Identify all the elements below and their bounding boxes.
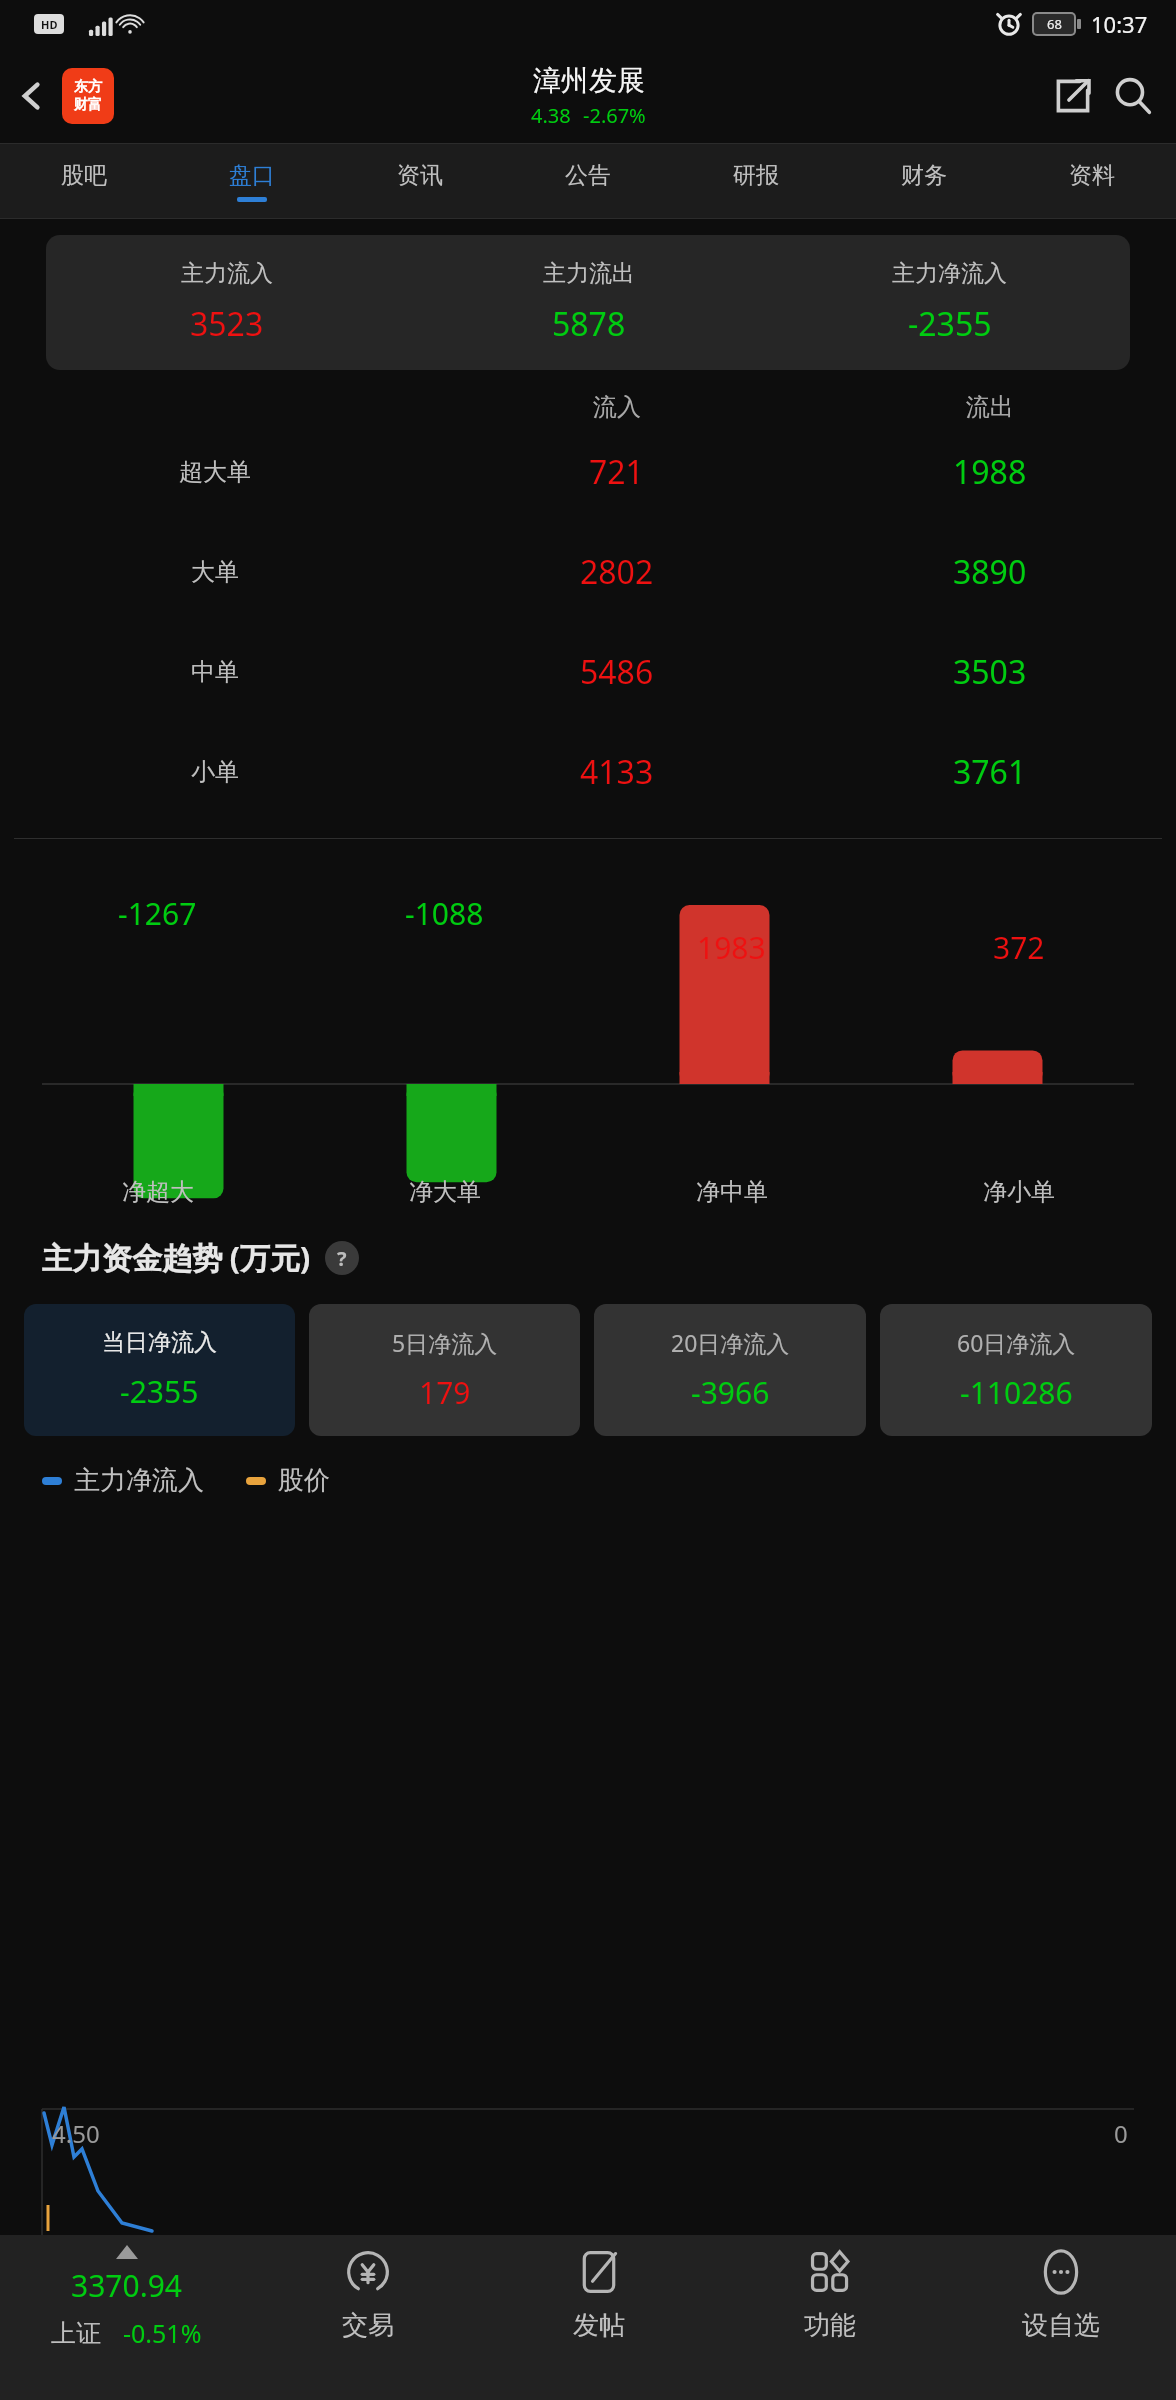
- staticText: 4133: [580, 750, 654, 794]
- staticText: 漳州发展: [533, 63, 645, 98]
- staticText: -2355: [908, 302, 992, 346]
- staticText: 179: [419, 1372, 471, 1413]
- staticText: 资讯: [397, 161, 443, 190]
- staticText: 4.50: [52, 2117, 100, 2150]
- staticText: 大单: [191, 557, 239, 587]
- button[interactable]: 当日净流入: [24, 1304, 295, 1436]
- staticText: 721: [589, 450, 644, 494]
- button[interactable]: 大单: [0, 522, 1176, 622]
- staticText: 研报: [733, 161, 779, 190]
- staticText: 主力流出: [543, 259, 635, 288]
- staticText: 公告: [565, 161, 611, 190]
- staticText: 财富: [74, 96, 102, 114]
- staticText: 功能: [804, 2309, 856, 2342]
- staticText: 设自选: [1022, 2309, 1100, 2342]
- button[interactable]: Search: [1102, 65, 1164, 127]
- button[interactable]: 中单: [0, 622, 1176, 722]
- staticText: -0.51%: [123, 2316, 202, 2350]
- staticText: 超大单: [179, 457, 251, 487]
- staticText: 3761: [953, 750, 1027, 794]
- staticText: 净大单: [409, 1177, 481, 1207]
- staticText: HD: [41, 17, 58, 32]
- button[interactable]: Share: [1044, 67, 1102, 125]
- staticText: 股价: [278, 1464, 330, 1497]
- button[interactable]: 公告: [504, 143, 672, 219]
- staticText: ?: [337, 1245, 347, 1272]
- staticText: 20日净流入: [671, 1327, 790, 1358]
- button[interactable]: 3370.94: [0, 2235, 253, 2400]
- staticText: 3503: [953, 650, 1027, 694]
- staticText: 60日净流入: [957, 1327, 1076, 1358]
- staticText: 财务: [901, 161, 947, 190]
- staticText: 净超大: [122, 1177, 194, 1207]
- staticText: 5878: [552, 302, 626, 346]
- button[interactable]: 资料: [1008, 143, 1176, 219]
- staticText: 1988: [953, 450, 1027, 494]
- button[interactable]: 功能: [714, 2235, 945, 2400]
- button[interactable]: 主力流入: [46, 235, 1130, 370]
- staticText: 0: [1114, 2117, 1128, 2150]
- staticText: 股吧: [61, 161, 107, 190]
- staticText: 盘口: [229, 161, 275, 190]
- button[interactable]: 交易: [253, 2235, 483, 2400]
- staticText: 净中单: [696, 1177, 768, 1207]
- button[interactable]: 5日净流入: [309, 1304, 580, 1436]
- staticText: -2.67%: [583, 102, 646, 129]
- staticText: 主力资金趋势 (万元): [42, 1237, 311, 1278]
- staticText: 流入: [593, 392, 641, 422]
- staticText: 372: [993, 927, 1045, 968]
- button[interactable]: 股吧: [0, 143, 168, 219]
- staticText: -1267: [118, 893, 197, 934]
- staticText: 主力净流入: [74, 1464, 204, 1497]
- button[interactable]: East Money: [62, 68, 114, 124]
- staticText: -2355: [120, 1371, 199, 1412]
- button[interactable]: 设自选: [945, 2235, 1176, 2400]
- button[interactable]: 研报: [672, 143, 840, 219]
- staticText: 5486: [580, 650, 654, 694]
- staticText: 资料: [1069, 161, 1115, 190]
- staticText: -3966: [691, 1372, 770, 1413]
- staticText: 中单: [191, 657, 239, 687]
- staticText: 主力流入: [181, 259, 273, 288]
- staticText: 10:37: [1091, 9, 1148, 39]
- button[interactable]: 财务: [840, 143, 1008, 219]
- button[interactable]: 60日净流入: [880, 1304, 1152, 1436]
- button[interactable]: Help: [325, 1241, 359, 1275]
- button[interactable]: 小单: [0, 722, 1176, 822]
- staticText: 5日净流入: [392, 1327, 498, 1358]
- staticText: 当日净流入: [102, 1328, 217, 1357]
- staticText: 3370.94: [71, 2265, 182, 2306]
- staticText: 发帖: [573, 2309, 625, 2342]
- staticText: 流出: [966, 392, 1014, 422]
- button[interactable]: 资讯: [336, 143, 504, 219]
- staticText: 小单: [191, 757, 239, 787]
- staticText: -110286: [960, 1372, 1073, 1413]
- button[interactable]: 发帖: [483, 2235, 714, 2400]
- staticText: 2802: [580, 550, 654, 594]
- staticText: 东方: [74, 78, 102, 96]
- staticText: 1983: [697, 927, 766, 968]
- staticText: 3523: [190, 302, 264, 346]
- button[interactable]: 盘口: [168, 143, 336, 219]
- staticText: 上证: [51, 2318, 101, 2349]
- button[interactable]: Back: [6, 70, 58, 122]
- staticText: 净小单: [983, 1177, 1055, 1207]
- staticText: -1088: [405, 893, 484, 934]
- staticText: 68: [1047, 15, 1062, 33]
- staticText: 交易: [342, 2309, 394, 2342]
- button[interactable]: 超大单: [0, 422, 1176, 522]
- staticText: 3890: [953, 550, 1027, 594]
- staticText: 4.38: [531, 102, 571, 129]
- staticText: 主力净流入: [892, 259, 1007, 288]
- button[interactable]: 20日净流入: [594, 1304, 866, 1436]
